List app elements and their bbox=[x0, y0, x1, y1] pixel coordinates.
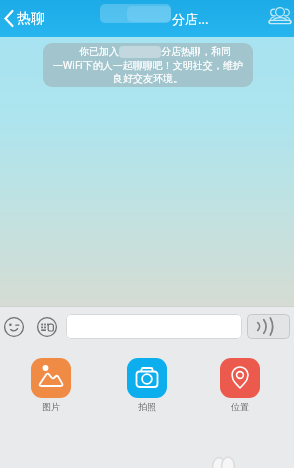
staticText: 一WiFi下的人一起聊聊吧！文明社交，维护 bbox=[53, 58, 243, 72]
button[interactable] bbox=[36, 316, 58, 338]
staticText: 图片 bbox=[42, 401, 60, 412]
button[interactable] bbox=[66, 314, 242, 339]
staticText: 热聊 bbox=[17, 10, 45, 28]
button[interactable] bbox=[3, 316, 25, 338]
button[interactable] bbox=[262, 0, 294, 30]
button[interactable] bbox=[31, 358, 71, 398]
button[interactable]: 热聊 bbox=[0, 0, 60, 37]
staticText: 良好交友环境。 bbox=[113, 72, 183, 85]
staticText: 拍照 bbox=[138, 401, 156, 412]
button[interactable] bbox=[247, 314, 290, 339]
button[interactable] bbox=[127, 358, 167, 398]
staticText: 你已加入 bbox=[79, 45, 119, 58]
staticText: 位置 bbox=[231, 401, 249, 412]
staticText: 分店热聊，和同 bbox=[161, 45, 231, 58]
staticText: 分店... bbox=[172, 10, 209, 28]
button[interactable] bbox=[220, 358, 260, 398]
